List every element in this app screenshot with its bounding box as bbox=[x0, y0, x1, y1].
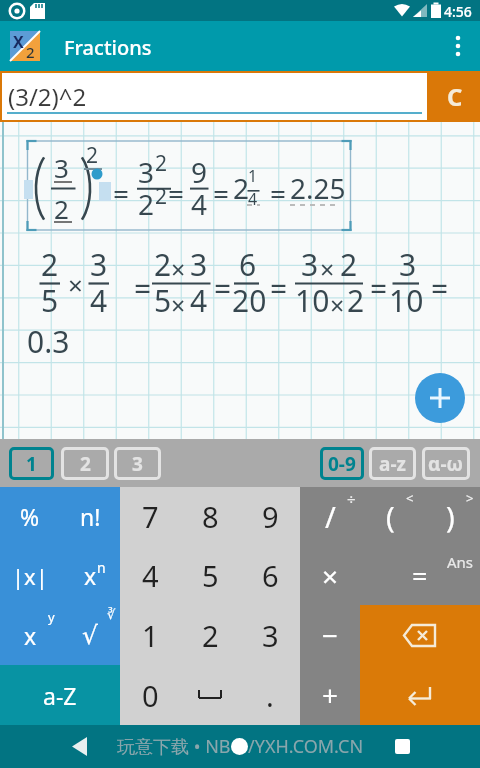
staticText: 0.3 bbox=[27, 321, 70, 362]
button[interactable]: 2 bbox=[180, 605, 240, 665]
button[interactable]: 7 bbox=[120, 487, 180, 546]
staticText: 3 bbox=[399, 244, 417, 285]
staticText: 9 bbox=[191, 153, 208, 191]
button[interactable]: 3 bbox=[114, 447, 161, 480]
staticText: = bbox=[270, 174, 287, 212]
staticText: × bbox=[320, 252, 335, 286]
staticText: 7 bbox=[142, 497, 159, 536]
button[interactable] bbox=[415, 373, 465, 423]
button[interactable] bbox=[360, 605, 480, 665]
staticText: ( bbox=[386, 497, 395, 536]
staticText: 2 bbox=[154, 244, 172, 285]
staticText: 6 bbox=[262, 556, 279, 595]
staticText: 2 bbox=[26, 42, 35, 62]
button[interactable]: α-ω bbox=[422, 447, 470, 480]
staticText: 3 bbox=[138, 153, 155, 191]
staticText: 10 bbox=[295, 280, 330, 321]
button[interactable]: + bbox=[300, 665, 360, 725]
button[interactable]: a-Z bbox=[0, 665, 120, 725]
button[interactable] bbox=[440, 26, 480, 66]
staticText: = bbox=[213, 174, 230, 212]
staticText: 0-9 bbox=[328, 451, 356, 477]
staticText: = bbox=[270, 268, 288, 309]
staticText: 1 bbox=[26, 451, 37, 477]
button[interactable]: 8 bbox=[180, 487, 240, 546]
staticText: . bbox=[266, 676, 274, 715]
staticText: 2 bbox=[340, 244, 358, 285]
staticText: / bbox=[325, 497, 336, 536]
button[interactable]: X bbox=[10, 31, 40, 61]
button[interactable]: √ bbox=[60, 605, 120, 665]
staticText: x bbox=[84, 560, 97, 591]
staticText: 9 bbox=[262, 497, 279, 536]
button[interactable] bbox=[60, 725, 100, 768]
staticText: 3 bbox=[190, 244, 208, 285]
staticText: 2 bbox=[155, 149, 168, 178]
staticText: ∛ bbox=[107, 607, 116, 622]
button[interactable] bbox=[388, 725, 418, 768]
button[interactable]: |x| bbox=[0, 546, 60, 605]
staticText: 6 bbox=[239, 244, 257, 285]
staticText: 3 bbox=[262, 616, 279, 655]
staticText: 5 bbox=[202, 556, 219, 595]
button[interactable]: 1 bbox=[9, 447, 54, 480]
button[interactable] bbox=[360, 665, 480, 725]
staticText: x bbox=[24, 620, 37, 651]
staticText: a-z bbox=[379, 451, 406, 477]
button[interactable]: = bbox=[360, 546, 480, 605]
staticText: Fractions bbox=[64, 34, 152, 61]
staticText: Ans bbox=[447, 552, 474, 572]
staticText: = bbox=[431, 268, 449, 309]
staticText: 4 bbox=[191, 185, 208, 223]
staticText: % bbox=[20, 501, 40, 532]
button[interactable]: 6 bbox=[240, 546, 300, 605]
staticText: = bbox=[113, 174, 130, 212]
button[interactable]: n! bbox=[60, 487, 120, 546]
staticText: n! bbox=[80, 501, 101, 532]
staticText: 2 bbox=[80, 451, 91, 477]
button[interactable]: 9 bbox=[240, 487, 300, 546]
staticText: X bbox=[13, 31, 24, 53]
button[interactable] bbox=[231, 738, 248, 755]
staticText: × bbox=[171, 252, 186, 286]
button[interactable]: ) bbox=[420, 487, 480, 546]
button[interactable]: (3/2)^2 bbox=[2, 73, 427, 120]
button[interactable]: . bbox=[240, 665, 300, 725]
button[interactable]: / bbox=[300, 487, 360, 546]
button[interactable]: − bbox=[300, 605, 360, 665]
staticText: 2 bbox=[202, 616, 219, 655]
staticText: + bbox=[322, 676, 339, 714]
staticText: 5 bbox=[154, 280, 172, 321]
staticText: 2 bbox=[86, 141, 99, 170]
staticText: × bbox=[68, 267, 83, 302]
button[interactable]: x bbox=[0, 605, 60, 665]
staticText: 5 bbox=[41, 280, 59, 321]
button[interactable]: ( bbox=[360, 487, 420, 546]
staticText: 2 bbox=[347, 280, 365, 321]
staticText: 2 bbox=[233, 169, 250, 207]
button[interactable]: % bbox=[0, 487, 60, 546]
staticText: = bbox=[168, 174, 185, 212]
button[interactable]: x bbox=[60, 546, 120, 605]
button[interactable]: 1 bbox=[120, 605, 180, 665]
staticText: 4 bbox=[90, 280, 108, 321]
button[interactable]: 2 bbox=[61, 447, 109, 480]
staticText: 8 bbox=[202, 497, 219, 536]
button[interactable]: 4 bbox=[120, 546, 180, 605]
button[interactable] bbox=[180, 665, 240, 725]
button[interactable]: C bbox=[429, 71, 480, 122]
staticText: 1 bbox=[142, 616, 159, 655]
button[interactable]: 3 bbox=[240, 605, 300, 665]
staticText: 玩意下载 • NB bbox=[117, 734, 231, 759]
button[interactable]: a-z bbox=[369, 447, 416, 480]
button[interactable]: 0-9 bbox=[320, 447, 364, 480]
staticText: × bbox=[171, 288, 186, 322]
button[interactable]: 0 bbox=[120, 665, 180, 725]
button[interactable]: 5 bbox=[180, 546, 240, 605]
button[interactable]: × bbox=[300, 546, 360, 605]
staticText: ÷ bbox=[347, 489, 356, 509]
staticText: < bbox=[406, 489, 414, 507]
staticText: = bbox=[412, 557, 428, 594]
staticText: (3/2)^2 bbox=[8, 80, 87, 113]
staticText: 2 bbox=[41, 244, 59, 285]
